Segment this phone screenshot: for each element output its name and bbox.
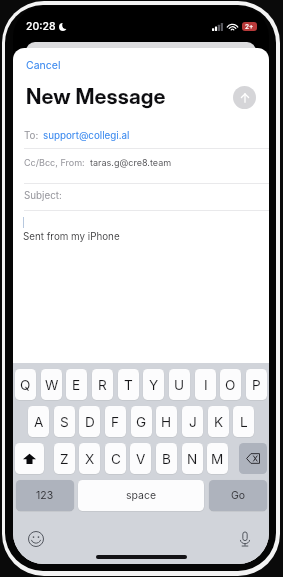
button[interactable]: D [79,406,100,437]
button[interactable]: V [130,443,151,474]
staticText: 2+ [245,23,254,31]
staticText: Cc/Bcc, From: [24,157,85,168]
staticText: N [187,451,198,467]
button[interactable]: Subject: [13,184,269,210]
staticText: Go [231,489,246,502]
staticText: 123 [36,489,54,502]
button[interactable]: X [79,443,100,474]
button[interactable]: O [220,369,241,400]
button[interactable]: Shift [15,443,44,474]
button[interactable]: P [246,369,267,400]
staticText: Q [20,377,31,393]
staticText: 20:28 [26,20,56,33]
staticText: T [124,377,133,393]
staticText: To: [24,130,39,142]
button[interactable]: L [233,406,254,437]
button[interactable]: To: [13,124,269,148]
staticText: B [162,451,171,467]
button[interactable]: S [54,406,75,437]
button[interactable]: Dictation [235,529,255,549]
staticText: U [174,377,185,393]
staticText: P [252,377,261,393]
button[interactable]: F [105,406,126,437]
button[interactable]: Cancel [22,57,65,74]
staticText: A [34,414,44,430]
staticText: F [111,414,120,430]
staticText: H [161,414,172,430]
button[interactable]: Emoji [26,529,46,549]
staticText: New Message [26,83,166,109]
staticText: E [72,377,81,393]
button[interactable]: A [28,406,49,437]
staticText: W [45,377,59,393]
staticText: Y [149,377,159,393]
button[interactable]: G [131,406,152,437]
button[interactable]: Cc/Bcc, From: [13,149,269,183]
staticText: support@collegi.al [43,130,130,142]
staticText: V [136,451,146,467]
button[interactable]: J [182,406,203,437]
staticText: R [98,377,107,393]
button[interactable]: R [92,369,113,400]
button[interactable]: C [105,443,126,474]
button[interactable]: 123 [16,480,74,511]
button[interactable]: W [41,369,62,400]
button[interactable]: Go [209,480,267,511]
staticText: D [85,414,95,430]
staticText: K [214,414,224,430]
staticText: L [240,414,248,430]
staticText: S [60,414,69,430]
staticText: Z [60,451,69,467]
button[interactable]: M [207,443,228,474]
button[interactable]: E [66,369,87,400]
button[interactable]: space [78,480,204,511]
button[interactable]: Z [54,443,75,474]
button[interactable]: U [169,369,190,400]
staticText: space [126,489,157,502]
button[interactable]: Send [233,86,256,109]
staticText: taras.g@cre8.team [90,157,172,168]
staticText: I [204,377,208,393]
staticText: C [111,451,121,467]
button[interactable]: Backspace [239,443,267,474]
staticText: X [85,451,95,467]
staticText: J [189,414,197,430]
button[interactable]: Q [15,369,36,400]
staticText: G [136,414,147,430]
button[interactable]: B [156,443,177,474]
button[interactable]: H [156,406,177,437]
staticText: Subject: [24,190,62,202]
button[interactable]: N [182,443,203,474]
staticText: Cancel [26,59,61,72]
button[interactable]: Y [143,369,164,400]
staticText: Sent from my iPhone [23,231,120,243]
button[interactable]: T [118,369,139,400]
button[interactable]: I [195,369,216,400]
button[interactable]: K [208,406,229,437]
staticText: M [211,451,224,467]
staticText: O [225,377,236,393]
